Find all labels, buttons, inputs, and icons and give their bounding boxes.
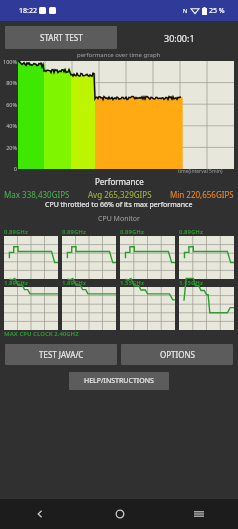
staticText: CPU Monitor [98, 214, 140, 224]
staticText: time(interval 5min) [178, 168, 223, 175]
staticText: TEST JAVA/C [39, 349, 84, 360]
staticText: performance over time graph [77, 51, 161, 59]
button[interactable]: Back [0, 499, 80, 529]
staticText: 0.89GHz [120, 228, 144, 236]
staticText: 30:00:1 [164, 32, 195, 44]
staticText: Avg 265,329GIPS [88, 189, 152, 200]
button[interactable]: OPTIONS [121, 344, 233, 365]
staticText: 80% [0, 79, 17, 86]
staticText: 40% [0, 122, 17, 129]
staticText: 0 [0, 165, 17, 172]
staticText: Min 220,656GIPS [170, 189, 234, 200]
button[interactable]: TEST JAVA/C [5, 344, 117, 365]
staticText: 0.89GHz [179, 228, 203, 236]
staticText: 0.89GHz [62, 228, 86, 236]
staticText: START TEST [40, 32, 83, 43]
staticText: 0.89GHz [4, 228, 28, 236]
staticText: 1.89GHz [4, 279, 28, 287]
staticText: 1.89GHz [62, 279, 86, 287]
staticText: N [183, 7, 188, 14]
staticText: 100% [0, 58, 17, 65]
staticText: 1.55GHz [120, 279, 144, 287]
staticText: 1.15GHz [179, 279, 203, 287]
button[interactable]: START TEST [5, 26, 117, 49]
staticText: Max 338,430GIPS [4, 189, 70, 200]
staticText: OPTIONS [160, 349, 195, 360]
staticText: Performance [95, 176, 144, 187]
staticText: HELP/INSTRUCTIONS [84, 376, 154, 386]
button[interactable]: Recents [159, 499, 238, 529]
staticText: 25 % [209, 6, 225, 16]
staticText: 20% [0, 144, 17, 151]
staticText: 18:22 [19, 6, 37, 16]
button[interactable]: Home [80, 499, 159, 529]
button[interactable]: HELP/INSTRUCTIONS [69, 372, 169, 390]
staticText: 60% [0, 101, 17, 108]
staticText: MAX CPU CLOCK 2.40GHZ [4, 330, 79, 338]
staticText: CPU throttled to 66% of its max performa… [45, 200, 193, 210]
